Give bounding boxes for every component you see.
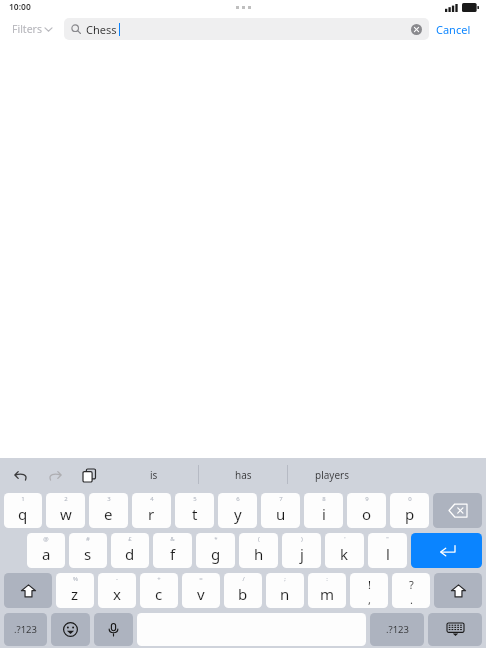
staticText: g <box>211 544 221 564</box>
staticText: players <box>315 468 349 482</box>
button[interactable]: Return <box>411 533 482 568</box>
staticText: = <box>199 575 203 583</box>
button[interactable]: ! <box>350 573 388 608</box>
staticText: ' <box>344 535 346 543</box>
staticText: Filters <box>12 22 42 36</box>
staticText: 6 <box>236 495 240 503</box>
staticText: , <box>368 592 371 607</box>
button[interactable]: : <box>308 573 346 608</box>
staticText: + <box>157 575 161 583</box>
button[interactable]: 2 <box>46 493 85 528</box>
button[interactable]: Shift <box>434 573 482 608</box>
button[interactable]: Filters <box>8 18 56 40</box>
staticText: ) <box>301 535 303 543</box>
staticText: a <box>42 544 51 564</box>
staticText: v <box>197 584 205 604</box>
staticText: ; <box>284 575 286 583</box>
button[interactable]: Emoji <box>51 613 90 646</box>
button[interactable]: 5 <box>175 493 214 528</box>
staticText: m <box>320 584 335 604</box>
staticText: k <box>340 544 349 564</box>
button[interactable]: players <box>288 458 376 491</box>
staticText: 2 <box>64 495 68 503</box>
button[interactable]: # <box>69 533 107 568</box>
staticText: q <box>18 504 28 524</box>
button[interactable]: Hide keyboard <box>428 613 482 646</box>
staticText: j <box>300 544 304 564</box>
button[interactable]: 4 <box>132 493 171 528</box>
button[interactable]: 0 <box>390 493 429 528</box>
staticText: £ <box>128 535 132 543</box>
button[interactable]: .?123 <box>4 613 47 646</box>
staticText: Chess <box>86 22 117 37</box>
button[interactable]: = <box>182 573 220 608</box>
button[interactable]: * <box>196 533 235 568</box>
staticText: .?123 <box>386 623 409 636</box>
staticText: 7 <box>279 495 283 503</box>
button[interactable]: " <box>368 533 407 568</box>
button[interactable]: is <box>110 458 198 491</box>
staticText: p <box>405 504 415 524</box>
button[interactable]: Shift <box>4 573 52 608</box>
button[interactable]: & <box>153 533 192 568</box>
button[interactable]: % <box>56 573 94 608</box>
button[interactable]: Cancel <box>429 18 478 41</box>
button[interactable]: .?123 <box>370 613 424 646</box>
button[interactable]: 9 <box>347 493 386 528</box>
staticText: / <box>242 575 245 583</box>
button[interactable]: Paste <box>79 465 99 485</box>
staticText: . <box>410 592 413 607</box>
button[interactable]: 3 <box>89 493 128 528</box>
button[interactable]: has <box>199 458 287 491</box>
staticText: i <box>322 504 326 524</box>
button[interactable]: / <box>224 573 262 608</box>
staticText: ! <box>368 577 371 592</box>
staticText: .?123 <box>14 623 37 636</box>
staticText: 8 <box>322 495 326 503</box>
button[interactable]: Voice input <box>94 613 133 646</box>
button[interactable]: 8 <box>304 493 343 528</box>
staticText: & <box>170 535 175 543</box>
button[interactable]: Clear text <box>410 23 422 35</box>
button[interactable]: ' <box>325 533 364 568</box>
button[interactable]: Chess <box>64 18 429 40</box>
staticText: t <box>192 504 198 524</box>
staticText: 9 <box>365 495 369 503</box>
staticText: 4 <box>150 495 154 503</box>
button[interactable]: 1 <box>4 493 42 528</box>
staticText: @ <box>43 535 49 543</box>
button[interactable]: 6 <box>218 493 257 528</box>
staticText: ? <box>409 577 414 592</box>
staticText: z <box>71 584 79 604</box>
button[interactable]: + <box>140 573 178 608</box>
button[interactable]: Undo <box>11 465 31 485</box>
staticText: - <box>116 575 118 583</box>
staticText: o <box>362 504 372 524</box>
staticText: * <box>214 535 218 543</box>
staticText: % <box>73 575 78 583</box>
staticText: 0 <box>408 495 412 503</box>
staticText: has <box>235 468 252 482</box>
button[interactable]: £ <box>111 533 149 568</box>
button[interactable]: - <box>98 573 136 608</box>
staticText: " <box>386 535 389 543</box>
button[interactable]: ( <box>239 533 278 568</box>
staticText: x <box>113 584 121 604</box>
staticText: # <box>86 535 90 543</box>
button[interactable]: ) <box>282 533 321 568</box>
button[interactable]: 7 <box>261 493 300 528</box>
staticText: r <box>148 504 155 524</box>
staticText: n <box>280 584 290 604</box>
button[interactable]: Redo <box>45 465 65 485</box>
staticText: is <box>150 468 158 482</box>
staticText: w <box>60 504 72 524</box>
button[interactable]: ? <box>392 573 430 608</box>
staticText: e <box>104 504 113 524</box>
button[interactable]: ; <box>266 573 304 608</box>
staticText: : <box>326 575 328 583</box>
staticText: f <box>170 544 176 564</box>
button[interactable]: Backspace <box>433 493 482 528</box>
staticText: 10:00 <box>9 1 31 13</box>
button[interactable]: @ <box>27 533 65 568</box>
